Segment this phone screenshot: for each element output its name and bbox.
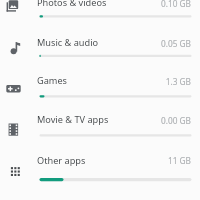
staticText: 11 GB	[0, 155, 191, 166]
staticText: Movie & TV apps	[37, 113, 109, 126]
staticText: 1.3 GB	[0, 76, 191, 87]
staticText: 0.00 GB	[0, 115, 191, 126]
staticText: Photos & videos	[37, 0, 107, 9]
staticText: Music & audio	[37, 36, 99, 49]
staticText: 0.05 GB	[0, 38, 191, 49]
staticText: Other apps	[37, 154, 86, 167]
staticText: 0.10 GB	[0, 0, 191, 9]
staticText: Games	[37, 74, 68, 87]
